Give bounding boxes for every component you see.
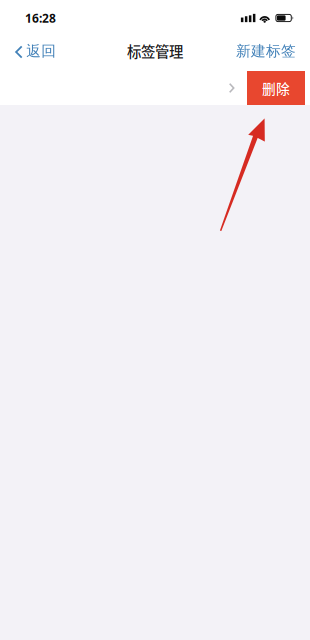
button[interactable]: 新建标签 (226, 34, 310, 68)
staticText: 标签管理 (127, 41, 183, 61)
button[interactable]: 返回 (0, 34, 66, 68)
staticText: 返回 (26, 42, 56, 60)
staticText: 16:28 (25, 10, 56, 26)
button[interactable]: 删除 (247, 67, 305, 105)
staticText: 删除 (262, 78, 290, 98)
staticText: 新建标签 (236, 42, 296, 60)
